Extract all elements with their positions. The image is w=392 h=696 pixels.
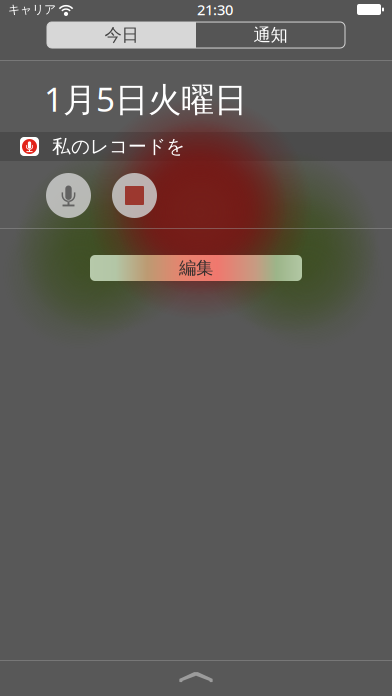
button[interactable]: Record (46, 173, 91, 218)
staticText: 通知 (253, 24, 287, 46)
button[interactable]: 通知 (196, 22, 345, 48)
staticText: 今日 (104, 24, 138, 46)
button[interactable]: Close notification center (166, 668, 226, 686)
button[interactable]: 編集 (90, 255, 302, 281)
staticText: 私のレコードを (52, 135, 185, 158)
staticText: 21:30 (197, 0, 233, 19)
staticText: 編集 (179, 257, 213, 279)
staticText: 1月5日火曜日 (44, 77, 247, 121)
button[interactable]: Stop (112, 173, 157, 218)
button[interactable]: 今日 (47, 22, 196, 48)
staticText: キャリア (8, 2, 56, 17)
button[interactable]: 私のレコードを (0, 132, 392, 161)
